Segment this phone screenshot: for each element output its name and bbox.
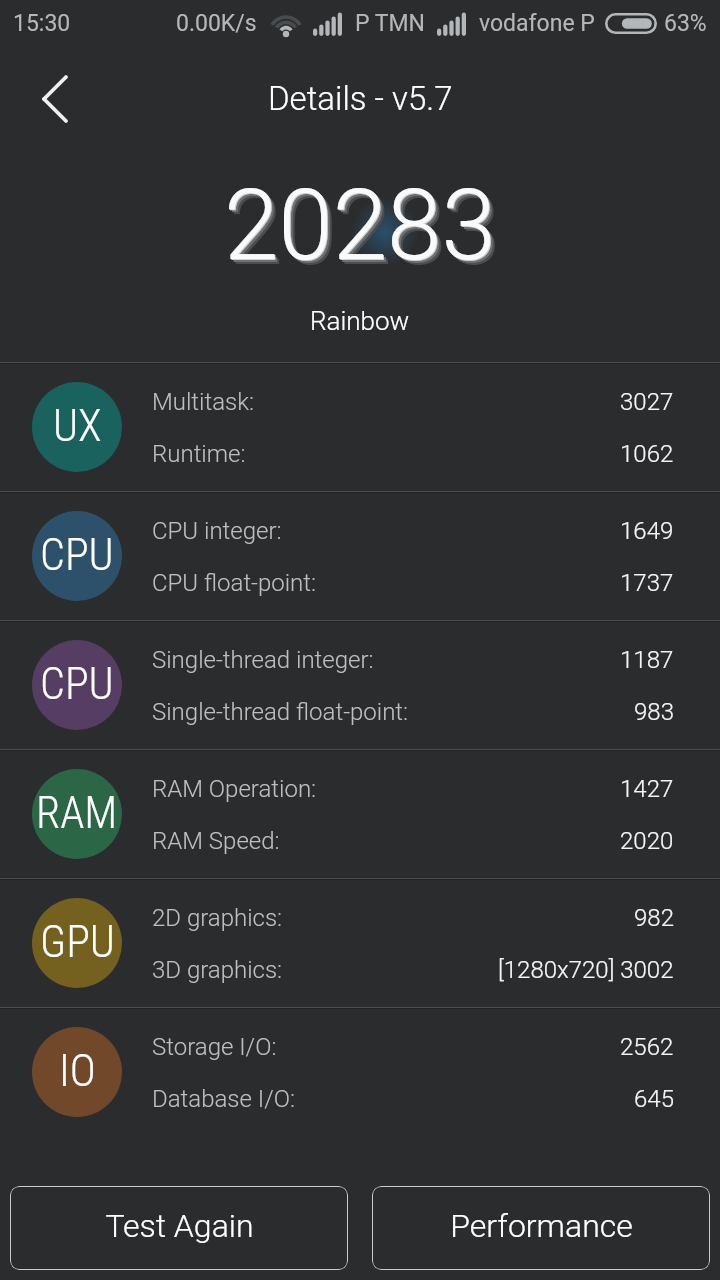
staticText: 20283 bbox=[225, 169, 497, 284]
button[interactable]: UX bbox=[0, 363, 720, 491]
button[interactable]: Test Again bbox=[10, 1186, 348, 1270]
staticText: CPU float-point: bbox=[152, 569, 317, 597]
staticText: Rainbow bbox=[310, 306, 410, 336]
staticText: CPU integer: bbox=[152, 517, 282, 545]
staticText: 1737 bbox=[620, 569, 674, 597]
staticText: Performance bbox=[450, 1207, 633, 1245]
staticText: Single-thread float-point: bbox=[152, 698, 409, 726]
staticText: Test Again bbox=[105, 1207, 254, 1245]
staticText: Runtime: bbox=[152, 440, 246, 468]
staticText: RAM bbox=[36, 787, 118, 839]
staticText: 1062 bbox=[620, 440, 674, 468]
staticText: 1187 bbox=[620, 646, 674, 674]
staticText: vodafone P bbox=[479, 10, 595, 37]
staticText: 3027 bbox=[620, 388, 674, 416]
staticText: GPU bbox=[40, 916, 115, 968]
staticText: CPU bbox=[40, 658, 114, 710]
staticText: 20283 bbox=[224, 168, 496, 283]
button[interactable]: Back bbox=[0, 48, 96, 144]
staticText: Database I/O: bbox=[152, 1085, 296, 1113]
staticText: RAM Speed: bbox=[152, 827, 280, 855]
staticText: 2562 bbox=[620, 1033, 674, 1061]
staticText: [1280x720] 3002 bbox=[498, 956, 674, 984]
button[interactable]: CPU bbox=[0, 492, 720, 620]
button[interactable]: CPU bbox=[0, 621, 720, 749]
staticText: Storage I/O: bbox=[152, 1033, 277, 1061]
staticText: P TMN bbox=[355, 10, 425, 37]
staticText: 20283 bbox=[229, 173, 501, 288]
staticText: 982 bbox=[634, 904, 674, 932]
staticText: 20283 bbox=[227, 171, 499, 286]
staticText: 63% bbox=[664, 10, 707, 37]
staticText: 983 bbox=[634, 698, 674, 726]
button[interactable]: GPU bbox=[0, 879, 720, 1007]
staticText: IO bbox=[59, 1045, 96, 1097]
staticText: 645 bbox=[634, 1085, 674, 1113]
staticText: 15:30 bbox=[13, 10, 71, 37]
staticText: 2D graphics: bbox=[152, 904, 283, 932]
staticText: UX bbox=[53, 400, 102, 452]
staticText: 3D graphics: bbox=[152, 956, 283, 984]
staticText: 2020 bbox=[620, 827, 674, 855]
staticText: Details - v5.7 bbox=[268, 79, 453, 118]
staticText: 1427 bbox=[620, 775, 674, 803]
button[interactable]: RAM bbox=[0, 750, 720, 878]
staticText: RAM Operation: bbox=[152, 775, 317, 803]
staticText: CPU bbox=[40, 529, 114, 581]
button[interactable]: IO bbox=[0, 1008, 720, 1136]
staticText: Multitask: bbox=[152, 388, 255, 416]
staticText: 0.00K/s bbox=[176, 10, 257, 37]
button[interactable]: Performance bbox=[372, 1186, 710, 1270]
staticText: 1649 bbox=[620, 517, 674, 545]
staticText: Single-thread integer: bbox=[152, 646, 374, 674]
